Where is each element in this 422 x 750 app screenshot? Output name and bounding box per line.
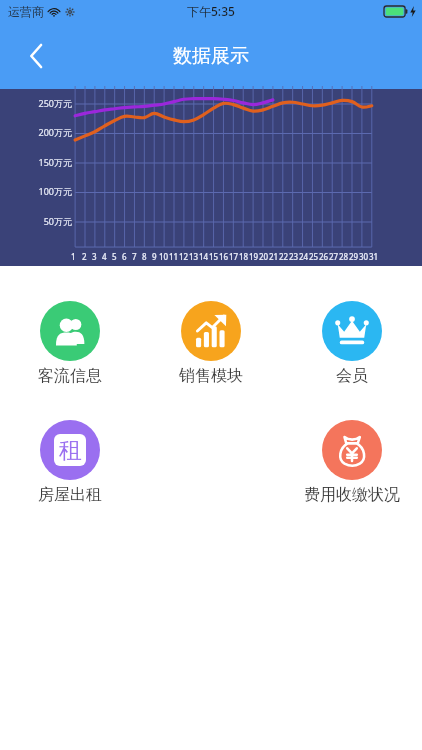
staticText: 8 [142, 251, 147, 262]
staticText: 1 [71, 251, 76, 262]
staticText: 10 [159, 251, 169, 262]
staticText: 24 [299, 251, 309, 262]
staticText: 14 [199, 251, 209, 262]
staticText: 30 [359, 251, 369, 262]
staticText: 15 [209, 251, 219, 262]
staticText: 9 [152, 251, 157, 262]
staticText: 19 [249, 251, 259, 262]
button[interactable]: 客流信息 [0, 299, 140, 388]
staticText: 数据展示 [173, 44, 249, 68]
staticText: 13 [189, 251, 199, 262]
staticText: 客流信息 [38, 366, 102, 386]
staticText: 销售模块 [179, 366, 243, 386]
staticText: 21 [269, 251, 279, 262]
staticText: 29 [349, 251, 359, 262]
staticText: 200万元 [38, 126, 72, 138]
staticText: 7 [132, 251, 137, 262]
staticText: 下午5:35 [187, 3, 235, 19]
staticText: 11 [169, 251, 179, 262]
staticText: 23 [289, 251, 299, 262]
staticText: 50万元 [43, 215, 72, 227]
button[interactable]: 费用收缴状况 [281, 418, 422, 507]
staticText: 租 [59, 436, 82, 465]
staticText: 31 [369, 251, 379, 262]
staticText: 100万元 [38, 185, 72, 197]
staticText: 16 [219, 251, 229, 262]
staticText: 150万元 [38, 156, 72, 168]
staticText: 18 [239, 251, 249, 262]
staticText: 250万元 [38, 97, 72, 109]
staticText: 2 [82, 251, 87, 262]
staticText: 28 [339, 251, 349, 262]
button[interactable]: 租 [0, 418, 140, 507]
button[interactable]: 会员 [281, 299, 422, 388]
staticText: 26 [319, 251, 329, 262]
staticText: 12 [179, 251, 189, 262]
button[interactable]: Back [14, 34, 58, 78]
staticText: 25 [309, 251, 319, 262]
staticText: 会员 [336, 366, 368, 386]
staticText: 27 [329, 251, 339, 262]
staticText: 费用收缴状况 [304, 485, 400, 505]
staticText: 运营商 [8, 4, 44, 19]
staticText: 22 [279, 251, 289, 262]
staticText: 房屋出租 [38, 485, 102, 505]
staticText: 6 [122, 251, 127, 262]
staticText: 4 [102, 251, 107, 262]
staticText: 20 [259, 251, 269, 262]
staticText: 5 [112, 251, 117, 262]
button[interactable]: 销售模块 [140, 299, 281, 388]
staticText: 17 [229, 251, 239, 262]
staticText: 3 [92, 251, 97, 262]
